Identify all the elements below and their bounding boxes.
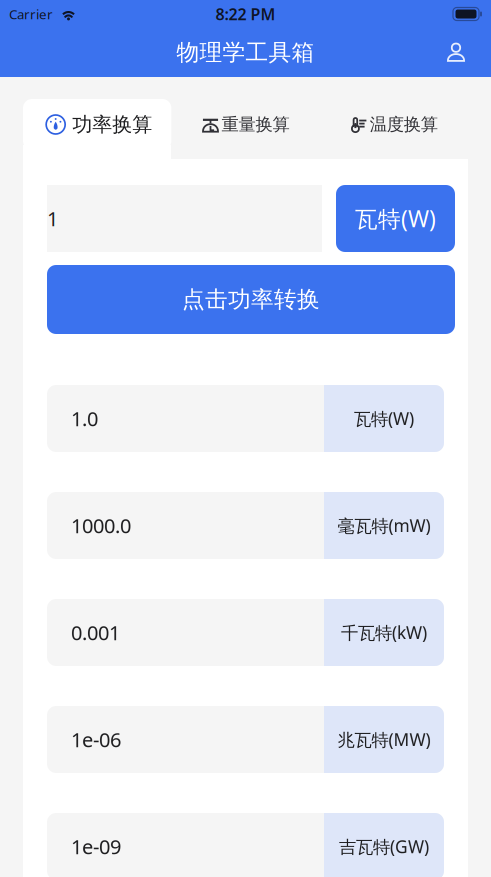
button[interactable]: 瓦特(W): [336, 185, 455, 252]
staticText: 1e-09: [71, 833, 121, 860]
staticText: 点击功率转换: [182, 286, 320, 313]
staticText: 毫瓦特(mW): [337, 514, 430, 537]
staticText: 瓦特(W): [355, 203, 436, 233]
button[interactable]: 功率换算: [23, 99, 171, 150]
button[interactable]: 重量换算: [171, 99, 320, 150]
staticText: 瓦特(W): [354, 407, 414, 430]
button[interactable]: Account: [433, 29, 479, 75]
staticText: 吉瓦特(GW): [339, 835, 429, 858]
staticText: 兆瓦特(MW): [337, 728, 430, 751]
staticText: 1: [47, 205, 58, 232]
staticText: 1000.0: [71, 512, 131, 539]
staticText: 物理学工具箱: [176, 39, 314, 66]
button[interactable]: 温度换算: [320, 99, 468, 150]
staticText: Carrier: [9, 5, 53, 23]
staticText: 千瓦特(kW): [341, 621, 427, 644]
button[interactable]: 点击功率转换: [47, 265, 455, 334]
staticText: 温度换算: [370, 114, 438, 135]
staticText: 重量换算: [221, 114, 289, 135]
staticText: 1e-06: [71, 726, 121, 753]
staticText: 1.0: [71, 405, 98, 432]
staticText: 8:22 PM: [215, 3, 275, 25]
staticText: 功率换算: [72, 112, 152, 137]
staticText: 0.001: [71, 619, 120, 646]
